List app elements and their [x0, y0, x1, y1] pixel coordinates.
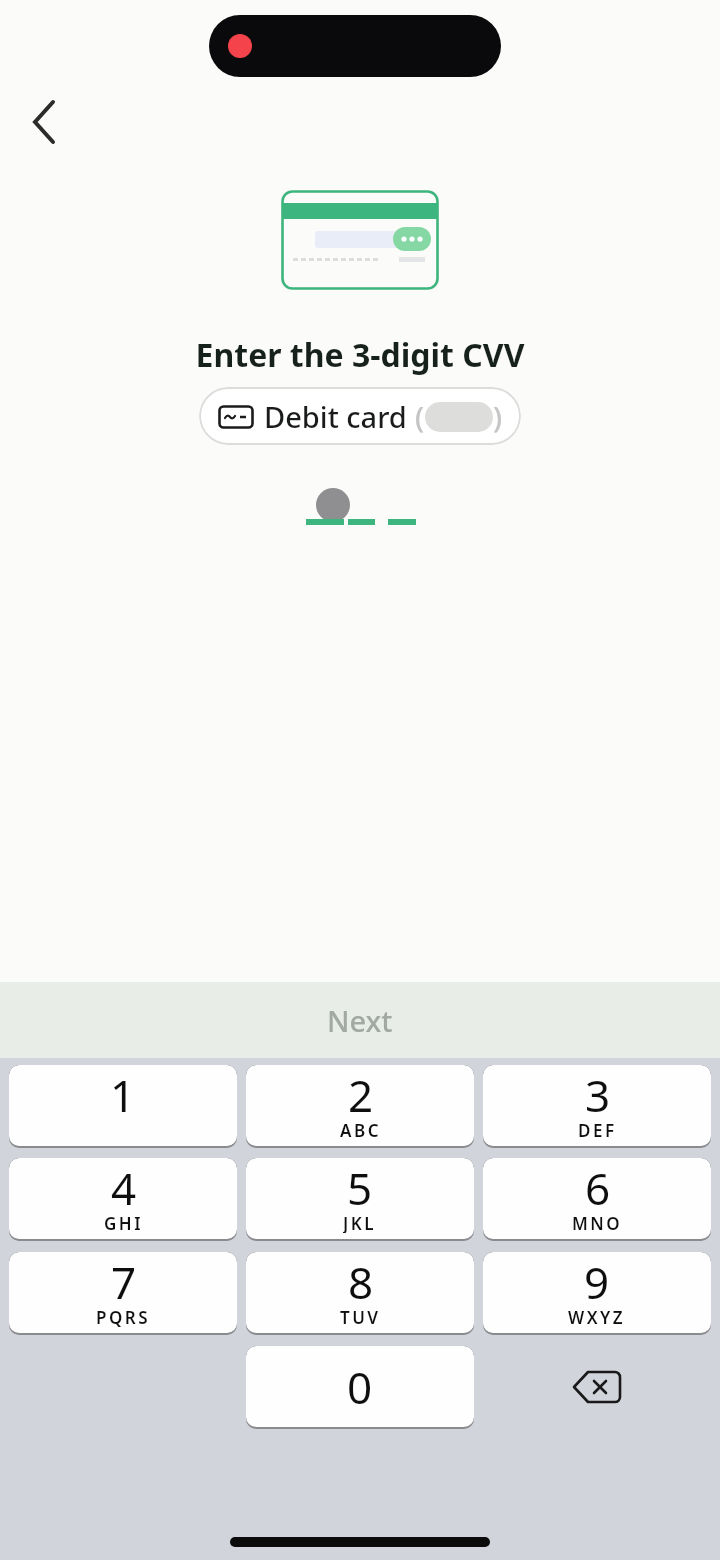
staticText: 1	[110, 1065, 136, 1125]
staticText: 7	[111, 1252, 137, 1312]
button[interactable]: 6	[483, 1158, 711, 1241]
staticText: JKL	[343, 1212, 377, 1233]
staticText: 8	[348, 1252, 374, 1312]
staticText: 3	[585, 1065, 611, 1125]
staticText: WXYZ	[568, 1306, 626, 1327]
button[interactable]: 4	[9, 1158, 237, 1241]
staticText: 4	[111, 1158, 137, 1218]
button[interactable]	[483, 1346, 711, 1427]
button[interactable]: Next	[0, 982, 720, 1058]
staticText: 0	[347, 1357, 373, 1417]
staticText: GHI	[104, 1212, 143, 1233]
button[interactable]: 7	[9, 1252, 237, 1335]
staticText: 9	[584, 1252, 610, 1312]
staticText: 5	[347, 1158, 373, 1218]
button[interactable]: 1	[9, 1065, 237, 1148]
button[interactable]: 8	[246, 1252, 474, 1335]
button[interactable]: 5	[246, 1158, 474, 1241]
staticText: DEF	[578, 1119, 617, 1140]
staticText: 2	[348, 1065, 374, 1125]
staticText: Debit card	[264, 397, 407, 436]
button[interactable]	[18, 92, 72, 152]
staticText: (	[415, 397, 425, 436]
button[interactable]: 0	[246, 1346, 474, 1429]
button[interactable]: 3	[483, 1065, 711, 1148]
staticText: Enter the 3-digit CVV	[0, 333, 720, 377]
staticText: )	[493, 397, 503, 436]
staticText: TUV	[340, 1306, 381, 1327]
staticText: Next	[327, 1001, 393, 1040]
staticText: PQRS	[96, 1306, 151, 1327]
staticText: ABC	[340, 1119, 381, 1140]
button[interactable]: Debit card	[199, 387, 521, 445]
staticText: 6	[585, 1158, 611, 1218]
button[interactable]: 2	[246, 1065, 474, 1148]
button[interactable]: 9	[483, 1252, 711, 1335]
staticText: MNO	[572, 1212, 623, 1233]
